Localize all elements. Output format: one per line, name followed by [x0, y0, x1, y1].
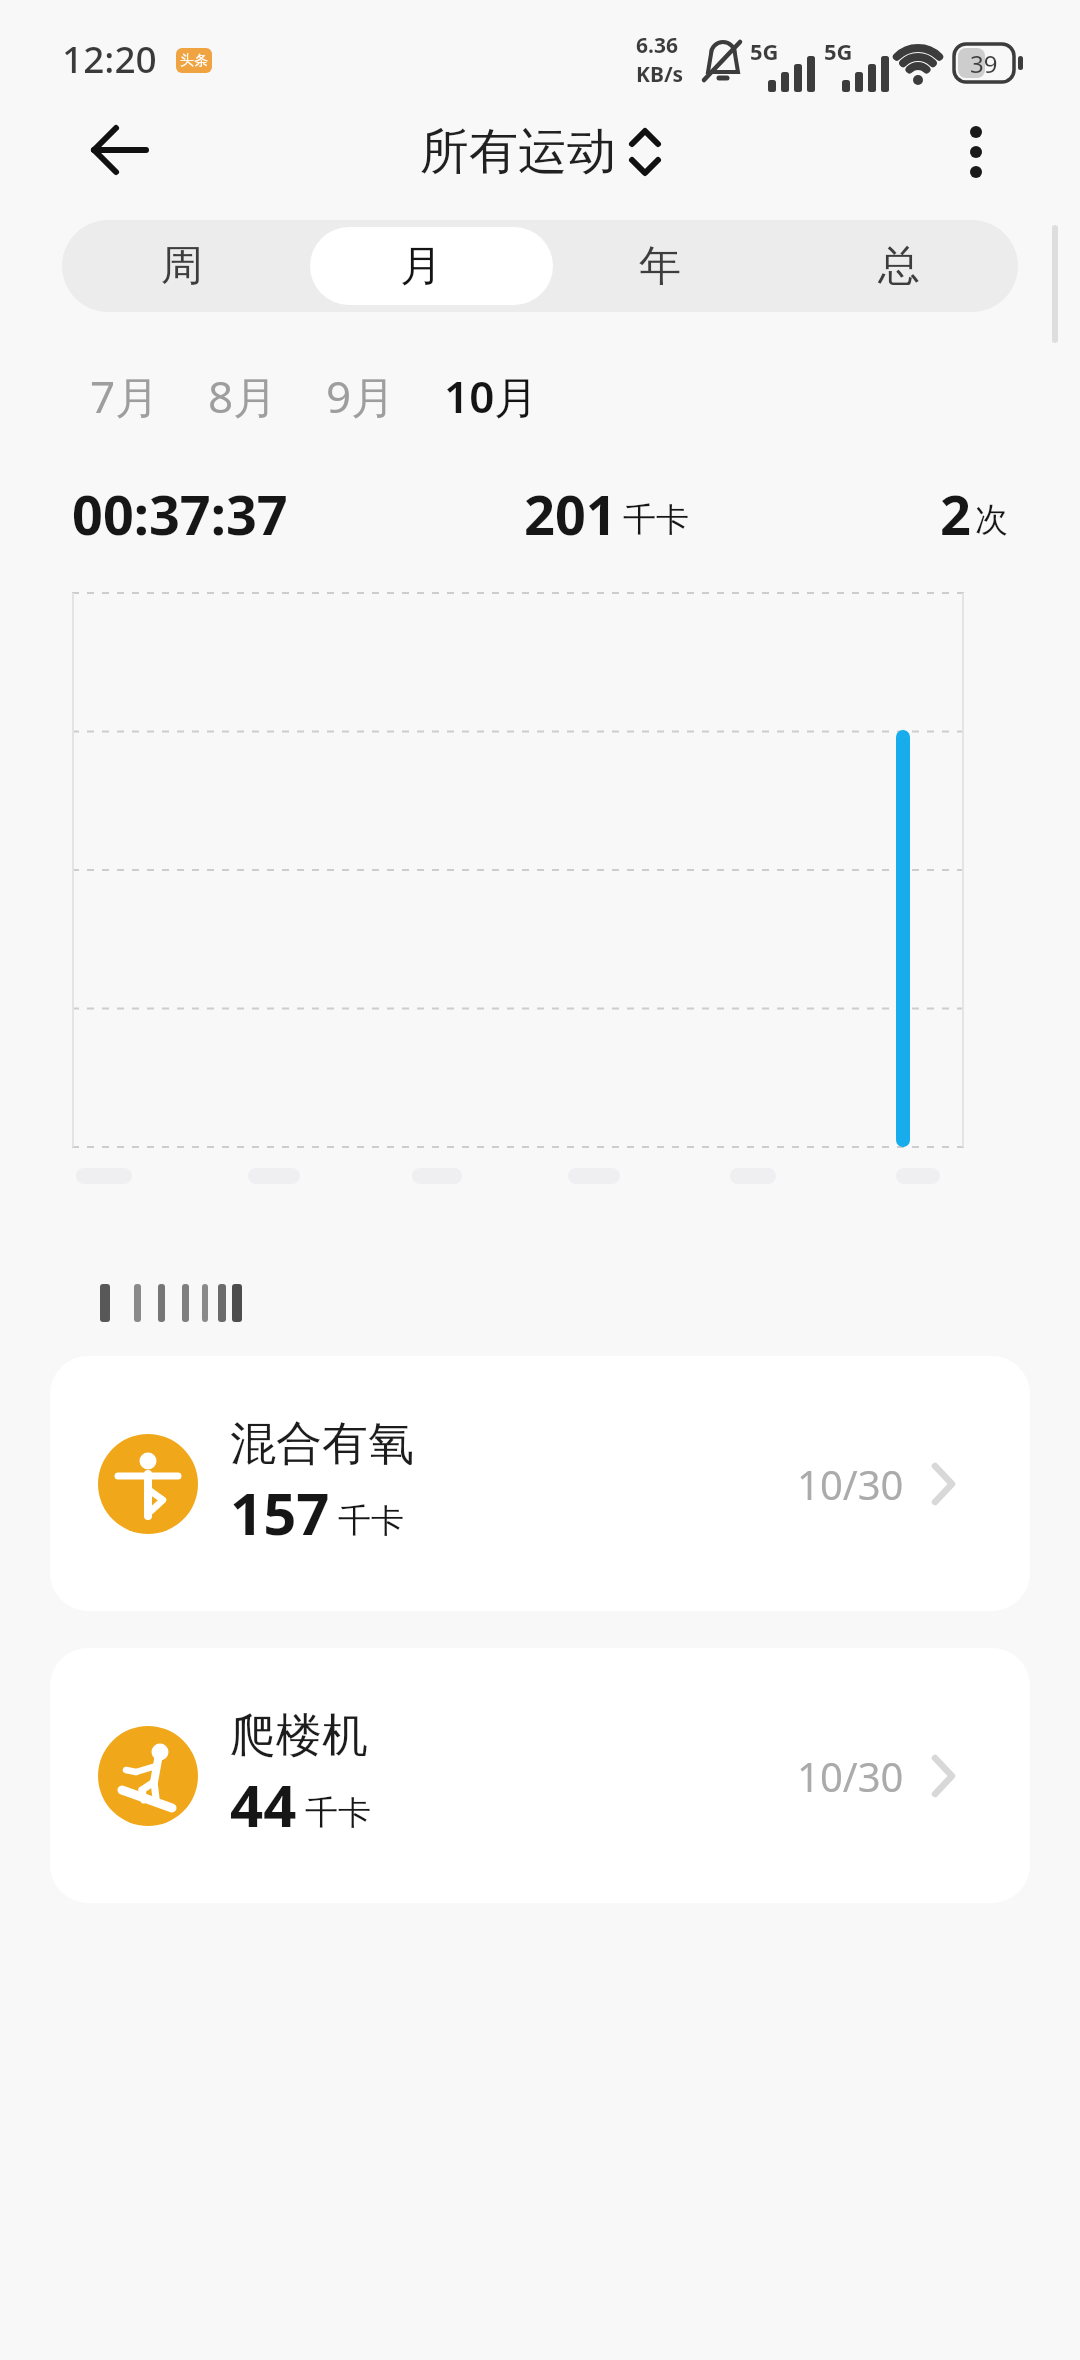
staticText: KB/s — [636, 60, 684, 89]
button[interactable] — [72, 112, 168, 192]
staticText: 10/30 — [797, 1457, 904, 1511]
button[interactable]: 月 — [301, 220, 540, 312]
button[interactable]: 总 — [779, 220, 1018, 312]
staticText: 5G — [824, 36, 853, 66]
staticText: 10/30 — [797, 1749, 904, 1803]
button[interactable]: 9月 — [326, 366, 444, 426]
button[interactable]: 年 — [540, 220, 779, 312]
staticText: 7月 — [90, 366, 160, 426]
staticText: 年 — [639, 240, 681, 293]
staticText: 5G — [750, 36, 779, 66]
button[interactable]: 7月 — [90, 366, 208, 426]
staticText: 39 — [970, 47, 998, 80]
staticText: 千卡 — [338, 1500, 404, 1542]
button[interactable]: 混合有氧 — [50, 1356, 1030, 1611]
staticText: 千卡 — [305, 1792, 371, 1834]
staticText: 千卡 — [623, 499, 689, 541]
staticText: 201 — [524, 477, 617, 551]
staticText: 月 — [400, 240, 442, 293]
button[interactable]: 周 — [62, 220, 301, 312]
staticText: 8月 — [208, 366, 278, 426]
staticText: 头条 — [180, 52, 208, 70]
staticText: 混合有氧 — [230, 1415, 414, 1473]
staticText: 6.36 — [636, 31, 678, 60]
staticText: 12:20 — [62, 33, 157, 83]
staticText: 总 — [878, 240, 920, 293]
staticText: 00:37:37 — [72, 477, 288, 551]
staticText: 周 — [161, 240, 203, 293]
button[interactable]: 8月 — [208, 366, 326, 426]
staticText: 次 — [975, 499, 1008, 541]
staticText: 所有运动 — [420, 121, 616, 183]
button[interactable]: 爬楼机 — [50, 1648, 1030, 1903]
staticText: 9月 — [326, 366, 396, 426]
staticText: 44 — [230, 1765, 297, 1844]
button[interactable]: 10月 — [444, 366, 587, 426]
staticText: 2 — [940, 477, 971, 551]
staticText: 10月 — [444, 366, 539, 426]
button[interactable] — [940, 112, 1020, 192]
staticText: 157 — [230, 1473, 330, 1552]
staticText: 爬楼机 — [230, 1707, 368, 1765]
